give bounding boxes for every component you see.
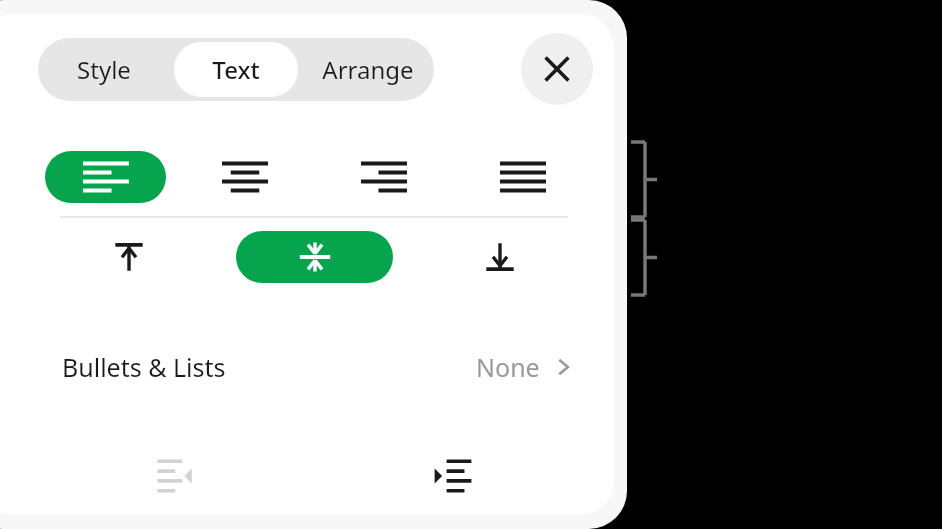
button[interactable]: Bullets & Lists <box>36 332 592 402</box>
button[interactable]: Align center <box>184 151 305 203</box>
staticText: None <box>476 350 540 384</box>
button[interactable]: Text <box>174 42 298 97</box>
button[interactable]: Style <box>42 42 166 97</box>
button[interactable]: Align left <box>45 151 166 203</box>
button[interactable]: Align bottom <box>421 231 578 283</box>
button[interactable]: Increase indent <box>314 438 592 514</box>
button[interactable]: Align middle <box>236 231 393 283</box>
staticText: Text <box>212 53 260 86</box>
button[interactable]: Align top <box>50 231 208 283</box>
button[interactable]: Decrease indent <box>36 438 314 514</box>
staticText: Bullets & Lists <box>62 350 226 384</box>
button[interactable]: Justify <box>462 151 583 203</box>
staticText: Arrange <box>322 53 414 86</box>
button[interactable]: Close <box>521 33 593 105</box>
button[interactable]: Align right <box>323 151 444 203</box>
button[interactable]: Arrange <box>306 42 430 97</box>
staticText: Text Color <box>56 52 183 89</box>
staticText: Style <box>77 53 131 86</box>
